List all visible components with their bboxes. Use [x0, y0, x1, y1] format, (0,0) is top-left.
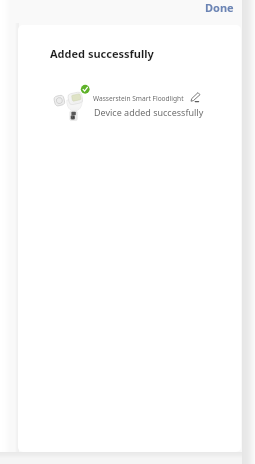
staticText: Done: [205, 0, 234, 15]
staticText: Added successfully: [50, 46, 154, 61]
staticText: Device added successfully: [94, 106, 204, 118]
button[interactable]: Done: [196, 0, 240, 19]
other: Rename device: [190, 92, 200, 102]
staticText: Wasserstein Smart Floodlight: [93, 94, 184, 103]
button[interactable]: Wasserstein Smart Floodlight: [26, 77, 231, 127]
button[interactable]: Rename device: [184, 86, 206, 108]
